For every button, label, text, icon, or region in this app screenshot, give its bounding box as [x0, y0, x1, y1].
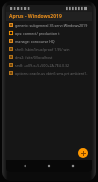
button[interactable]: Aprus - Windows2019: [6, 12, 92, 21]
button[interactable]: manage: concourse HQ: [6, 37, 92, 45]
button[interactable]: Home: [44, 161, 54, 171]
staticText: shell: /sbin/linux/proof 1.95/ win 190+0…: [15, 47, 89, 52]
button[interactable]: options: oracle-us vbtn6 sms.prt ambient…: [6, 69, 92, 77]
staticText: Aprus - Windows2019: [9, 13, 62, 20]
staticText: generic: subgeneral 35.serv=Windows2019 …: [15, 23, 89, 28]
button[interactable]: shell: /sbin/linux/proof 1.95/ win 190+0…: [6, 45, 92, 53]
staticText: ops: connect/ production t: [15, 31, 60, 36]
staticText: options: oracle-us vbtn6 sms.prt ambient…: [15, 71, 89, 76]
staticText: dns2: /site/0/localhost apache_windows_s…: [15, 55, 89, 60]
button[interactable]: generic: subgeneral 35.serv=Windows2019 …: [6, 21, 92, 29]
button[interactable]: Add: [78, 148, 88, 158]
button[interactable]: ops: connect/ production t: [6, 29, 92, 37]
button[interactable]: Recents: [68, 161, 78, 171]
button[interactable]: srv8: +x09-x+5+500+2A.7E4.0.32 10.40_fir…: [6, 61, 92, 69]
button[interactable]: Back: [20, 161, 30, 171]
button[interactable]: dns2: /site/0/localhost apache_windows_s…: [6, 53, 92, 61]
staticText: manage: concourse HQ: [15, 39, 55, 44]
staticText: srv8: +x09-x+5+500+2A.7E4.0.32 10.40_fir…: [15, 63, 89, 68]
